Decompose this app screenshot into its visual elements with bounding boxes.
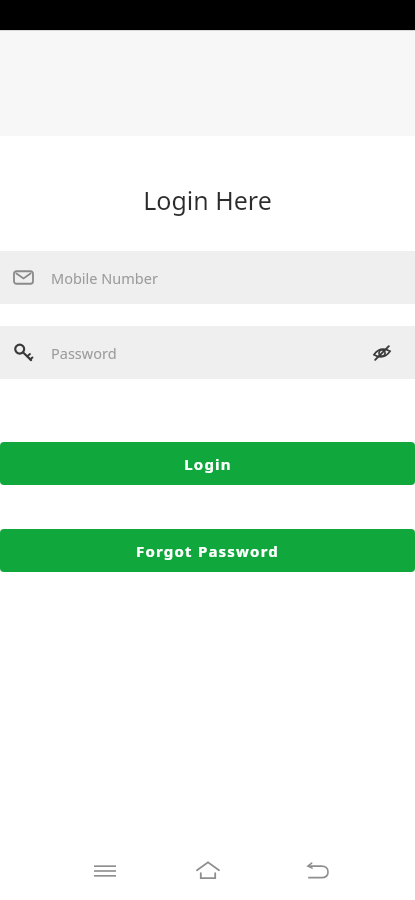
staticText: Login Here xyxy=(143,183,272,217)
staticText: Password xyxy=(51,343,117,363)
button[interactable]: Login xyxy=(0,442,415,485)
button[interactable]: Show password xyxy=(369,340,395,366)
button[interactable]: Recents xyxy=(84,850,126,892)
button[interactable]: Mobile Number xyxy=(0,251,415,304)
staticText: Forgot Password xyxy=(136,541,279,561)
button[interactable]: Forgot Password xyxy=(0,529,415,572)
staticText: Login xyxy=(184,454,232,474)
button[interactable]: Back xyxy=(296,850,338,892)
staticText: Mobile Number xyxy=(51,268,158,288)
button[interactable]: Home xyxy=(187,850,229,892)
button[interactable]: Password xyxy=(0,326,415,379)
